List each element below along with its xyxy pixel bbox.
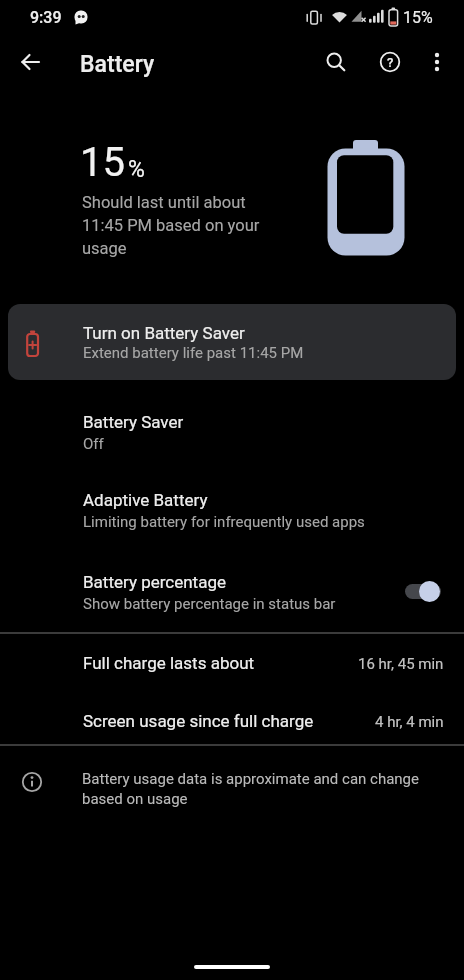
button[interactable]: [417, 40, 457, 84]
button[interactable]: [314, 40, 358, 84]
staticText: 9:39: [30, 8, 62, 27]
staticText: 15%: [403, 8, 433, 27]
staticText: Show battery percentage in status bar: [83, 595, 336, 613]
staticText: Battery usage data is approximate and ca…: [82, 770, 419, 807]
staticText: Limiting battery for infrequently used a…: [83, 513, 365, 531]
button[interactable]: Battery percentage: [0, 560, 464, 626]
button[interactable]: [8, 40, 52, 84]
staticText: Screen usage since full charge: [83, 711, 314, 731]
staticText: Battery: [80, 51, 155, 78]
staticText: 16 hr, 45 min: [358, 655, 444, 673]
button[interactable]: Battery Saver: [0, 400, 464, 464]
staticText: %: [128, 156, 145, 183]
button[interactable]: Turn on Battery Saver: [8, 304, 456, 380]
staticText: Extend battery life past 11:45 PM: [83, 344, 304, 362]
staticText: Off: [83, 435, 104, 453]
button[interactable]: ?: [368, 40, 412, 84]
staticText: Battery percentage: [83, 572, 226, 592]
staticText: Adaptive Battery: [83, 490, 208, 510]
button[interactable]: Adaptive Battery: [0, 478, 464, 542]
button[interactable]: Screen usage since full charge: [0, 698, 464, 750]
button[interactable]: Full charge lasts about: [0, 640, 464, 692]
staticText: Turn on Battery Saver: [83, 323, 245, 343]
staticText: Should last until about 11:45 PM based o…: [82, 193, 260, 258]
staticText: 15: [80, 139, 125, 186]
staticText: ?: [387, 55, 394, 70]
staticText: 4 hr, 4 min: [375, 713, 444, 731]
staticText: Battery Saver: [83, 412, 184, 432]
staticText: Full charge lasts about: [83, 653, 255, 673]
